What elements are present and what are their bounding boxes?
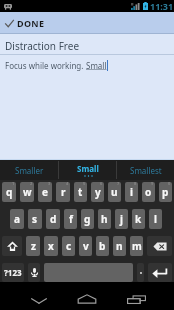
button[interactable]: Enter (148, 263, 172, 282)
staticText: y (95, 185, 101, 199)
button[interactable]: Voice input (28, 263, 40, 282)
staticText: Smallest (130, 165, 162, 176)
button[interactable]: o (142, 182, 155, 202)
staticText: 6 (100, 182, 103, 186)
button[interactable]: q (2, 182, 16, 202)
button[interactable]: p (159, 182, 172, 202)
button[interactable]: n (113, 236, 126, 256)
button[interactable]: t (74, 182, 87, 202)
staticText: s (32, 212, 38, 226)
button[interactable]: m (130, 236, 143, 256)
staticText: DONE (17, 17, 45, 29)
staticText: g (84, 212, 91, 226)
staticText: c (66, 239, 72, 253)
staticText: Distraction Free (5, 39, 80, 53)
button[interactable]: e (38, 182, 52, 202)
staticText: 2 (30, 182, 33, 186)
staticText: 5 (83, 182, 86, 186)
staticText: k (135, 212, 142, 226)
button[interactable]: f (64, 209, 77, 229)
button[interactable]: Distraction Free (0, 34, 174, 159)
button[interactable]: Shift (2, 236, 22, 256)
button[interactable]: DONE (0, 12, 53, 34)
button[interactable]: r (56, 182, 70, 202)
staticText: 3 (48, 182, 51, 186)
button[interactable]: d (46, 209, 60, 229)
staticText: 7 (117, 182, 120, 186)
staticText: 9 (151, 182, 154, 186)
button[interactable]: Recent apps (112, 282, 160, 310)
button[interactable]: i (125, 182, 138, 202)
staticText: 0 (168, 182, 171, 186)
staticText: 11:31 (150, 0, 174, 12)
button[interactable]: y (91, 182, 104, 202)
button[interactable]: b (96, 236, 109, 256)
staticText: i (130, 185, 133, 199)
staticText: f (69, 212, 73, 226)
button[interactable]: v (79, 236, 92, 256)
staticText: j (120, 212, 123, 226)
button[interactable]: ?123 (2, 263, 24, 282)
button[interactable]: Backspace (147, 236, 172, 256)
staticText: o (145, 185, 152, 199)
staticText: b (99, 239, 106, 253)
button[interactable]: w (20, 182, 34, 202)
staticText: m (132, 239, 142, 253)
staticText: a (14, 212, 20, 226)
staticText: u (111, 185, 118, 199)
button[interactable]: a (10, 209, 24, 229)
staticText: t (78, 185, 83, 199)
staticText: d (50, 212, 57, 226)
button[interactable]: Home (63, 282, 111, 310)
button[interactable]: Small (59, 160, 116, 180)
staticText: 4 (66, 182, 69, 186)
button[interactable]: Back (15, 282, 63, 310)
staticText: e (42, 185, 48, 199)
button[interactable]: g (81, 209, 94, 229)
staticText: q (6, 185, 13, 199)
staticText: Smaller (15, 165, 44, 176)
button[interactable]: c (62, 236, 75, 256)
button[interactable]: s (28, 209, 42, 229)
button[interactable]: k (132, 209, 145, 229)
staticText: r (61, 185, 66, 199)
staticText: ?123 (4, 267, 22, 278)
staticText: z (31, 239, 36, 253)
staticText: x (48, 239, 54, 253)
staticText: l (154, 212, 157, 226)
staticText: 1 (12, 182, 15, 186)
button[interactable]: x (44, 236, 58, 256)
staticText: Small (77, 163, 99, 174)
button[interactable]: Smallest (117, 160, 174, 180)
staticText: 8 (134, 182, 137, 186)
staticText: n (116, 239, 123, 253)
button[interactable]: h (98, 209, 111, 229)
staticText: v (83, 239, 89, 253)
button[interactable]: Smaller (0, 160, 58, 180)
button[interactable] (137, 263, 144, 282)
staticText: h (101, 212, 108, 226)
staticText: Small (86, 60, 107, 71)
staticText: Focus while working. (5, 60, 86, 71)
staticText: w (23, 185, 32, 199)
staticText: p (162, 185, 169, 199)
button[interactable]: j (115, 209, 128, 229)
button[interactable]: l (149, 209, 162, 229)
button[interactable]: z (26, 236, 40, 256)
button[interactable]: u (108, 182, 121, 202)
